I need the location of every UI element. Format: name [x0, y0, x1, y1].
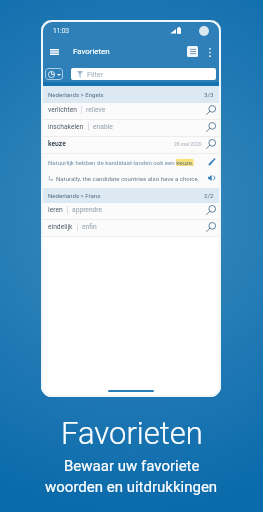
- button[interactable]: eindelijk: [41, 220, 221, 237]
- staticText: 2/2: [204, 192, 214, 199]
- staticText: keuze: [48, 140, 66, 148]
- button[interactable]: Look up: [204, 137, 218, 151]
- staticText: Naturally, the candidate countries also …: [56, 175, 204, 182]
- staticText: inschakelen: [48, 123, 84, 131]
- staticText: Favorieten: [61, 415, 203, 451]
- button[interactable]: More options: [204, 45, 216, 59]
- button[interactable]: keuze: [41, 137, 221, 154]
- button[interactable]: Nederlands > Frans: [41, 188, 221, 203]
- staticText: verlichten: [48, 106, 77, 114]
- staticText: Nederlands > Frans: [48, 192, 101, 199]
- button[interactable]: List layout: [187, 46, 198, 57]
- button[interactable]: inschakelen: [41, 120, 221, 137]
- staticText: enable: [93, 123, 113, 131]
- button[interactable]: Recent filter: [45, 68, 63, 80]
- button[interactable]: Look up: [204, 203, 218, 217]
- button[interactable]: Natuurlijk hebben de kandidaat-landen oo…: [41, 154, 221, 170]
- button[interactable]: Navigation menu: [45, 42, 64, 61]
- button[interactable]: verlichten: [41, 103, 221, 120]
- staticText: Nederlands > Engels: [48, 91, 104, 98]
- staticText: Filter: [87, 70, 104, 78]
- button[interactable]: Naturally, the candidate countries also …: [41, 170, 221, 188]
- button[interactable]: Look up: [204, 120, 218, 134]
- button[interactable]: Pronounce: [206, 172, 218, 184]
- button[interactable]: leren: [41, 203, 221, 220]
- staticText: Bewaar uw favoriete: [64, 457, 200, 475]
- staticText: relieve: [86, 106, 106, 114]
- staticText: 3/3: [204, 91, 214, 98]
- button[interactable]: Look up: [204, 103, 218, 117]
- button[interactable]: Look up: [204, 220, 218, 234]
- staticText: woorden en uitdrukkingen: [45, 478, 218, 496]
- staticText: 28 mei 2020: [174, 141, 202, 147]
- staticText: eindelijk: [48, 223, 73, 231]
- button[interactable]: Edit: [206, 156, 218, 168]
- staticText: leren: [48, 206, 63, 214]
- staticText: enfin: [82, 223, 97, 231]
- button[interactable]: Nederlands > Engels: [41, 86, 221, 103]
- staticText: Natuurlijk hebben de kandidaat-landen oo…: [48, 159, 204, 166]
- staticText: apprendre: [72, 206, 103, 214]
- button[interactable]: Filter: [71, 68, 216, 80]
- staticText: 11:03: [53, 27, 70, 35]
- staticText: Favorieten: [73, 47, 110, 56]
